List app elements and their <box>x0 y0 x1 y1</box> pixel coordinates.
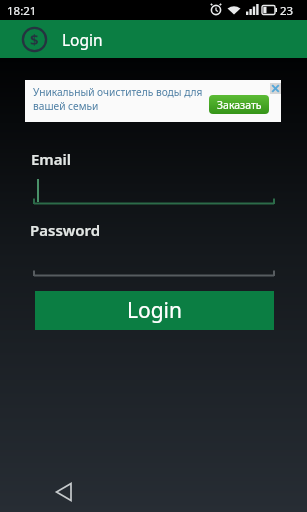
staticText: 23 <box>280 3 294 19</box>
button[interactable] <box>270 83 281 94</box>
button[interactable]: Заказать <box>209 95 269 114</box>
staticText: Email <box>31 149 72 169</box>
staticText: Login <box>127 296 183 325</box>
button[interactable]: Login <box>35 291 274 330</box>
staticText: Заказать <box>217 98 262 112</box>
staticText: Уникальный очиститель воды для <box>33 85 203 99</box>
button[interactable]: Уникальный очиститель воды для <box>25 80 281 122</box>
staticText: $ <box>30 29 39 49</box>
staticText: Password <box>30 220 101 240</box>
staticText: 18:21 <box>7 3 37 19</box>
staticText: Login <box>62 29 103 50</box>
button[interactable] <box>50 478 78 506</box>
staticText: вашей семьи <box>33 99 99 113</box>
